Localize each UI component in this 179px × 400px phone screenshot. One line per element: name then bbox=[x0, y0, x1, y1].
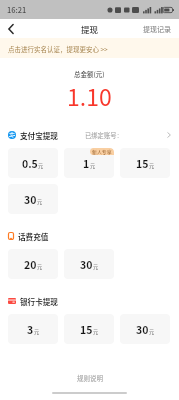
staticText: 30 bbox=[136, 322, 149, 337]
button[interactable]: 规则说明 bbox=[0, 371, 179, 383]
button[interactable]: 0.5 bbox=[8, 148, 58, 178]
staticText: 元 bbox=[93, 263, 99, 271]
button[interactable]: 30 bbox=[64, 249, 114, 279]
staticText: 元 bbox=[149, 328, 155, 336]
staticText: 元 bbox=[93, 328, 99, 336]
staticText: 30 bbox=[80, 257, 93, 272]
button[interactable]: 1 bbox=[64, 148, 114, 178]
staticText: 支付宝提现 bbox=[20, 130, 58, 141]
staticText: 元 bbox=[90, 162, 96, 170]
staticText: 元 bbox=[34, 328, 40, 336]
staticText: 元 bbox=[149, 162, 155, 170]
button[interactable]: 15 bbox=[64, 314, 114, 344]
button[interactable]: 15 bbox=[120, 148, 170, 178]
staticText: 30 bbox=[24, 192, 37, 207]
staticText: 提现 bbox=[81, 23, 99, 35]
staticText: 银行卡提现 bbox=[20, 296, 58, 307]
staticText: 15 bbox=[80, 322, 93, 337]
staticText: 规则说明 bbox=[77, 373, 103, 382]
staticText: 20 bbox=[24, 257, 37, 272]
staticText: 元 bbox=[37, 198, 43, 206]
button[interactable]: Back bbox=[0, 19, 22, 38]
staticText: 3 bbox=[27, 322, 34, 337]
button[interactable]: 30 bbox=[120, 314, 170, 344]
staticText: 提现记录 bbox=[143, 24, 171, 34]
staticText: 已绑定账号： bbox=[85, 131, 123, 140]
staticText: 话费充值 bbox=[18, 231, 49, 242]
button[interactable]: 30 bbox=[8, 184, 58, 214]
staticText: 元 bbox=[38, 162, 44, 170]
staticText: 16:21 bbox=[7, 4, 27, 15]
staticText: 元 bbox=[37, 263, 43, 271]
button[interactable]: 已绑定账号： bbox=[85, 129, 171, 141]
staticText: 1.10 bbox=[67, 79, 112, 107]
button[interactable]: 提现记录 bbox=[135, 19, 179, 38]
button[interactable]: 点击进行实名认证，提现更安心 >> bbox=[0, 38, 179, 58]
button[interactable]: 20 bbox=[8, 249, 58, 279]
staticText: 15 bbox=[136, 156, 149, 171]
staticText: 点击进行实名认证，提现更安心 >> bbox=[8, 44, 108, 53]
staticText: 0.5 bbox=[22, 156, 38, 171]
staticText: 新人专享 bbox=[92, 148, 112, 155]
staticText: 1 bbox=[83, 156, 90, 171]
staticText: 总金额(元) bbox=[74, 69, 105, 78]
button[interactable]: 3 bbox=[8, 314, 58, 344]
